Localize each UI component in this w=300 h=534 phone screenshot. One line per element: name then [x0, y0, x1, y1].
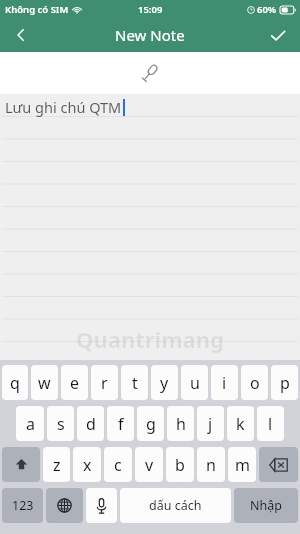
button[interactable]: Nhập [234, 488, 298, 523]
staticText: j [208, 413, 213, 435]
staticText: Nhập [250, 497, 282, 514]
staticText: e [70, 372, 80, 394]
staticText: g [146, 413, 156, 435]
staticText: c [114, 454, 122, 476]
button[interactable]: i [211, 365, 238, 400]
button[interactable]: c [104, 447, 132, 482]
button[interactable]: q [2, 365, 28, 400]
button[interactable]: z [43, 447, 70, 482]
button[interactable]: Shift [2, 447, 40, 482]
staticText: q [10, 372, 20, 394]
staticText: dấu cách [149, 497, 202, 514]
staticText: v [145, 454, 154, 476]
staticText: 60% [257, 3, 277, 16]
button[interactable]: Backspace [259, 447, 298, 482]
button[interactable]: y [151, 365, 178, 400]
button[interactable]: p [271, 365, 298, 400]
staticText: t [132, 372, 138, 394]
staticText: l [268, 413, 273, 435]
button[interactable]: w [31, 365, 58, 400]
button[interactable]: Save note [256, 18, 300, 52]
button[interactable]: dấu cách [120, 488, 231, 523]
button[interactable]: h [167, 406, 194, 441]
staticText: New Note [115, 25, 185, 45]
button[interactable]: l [257, 406, 284, 441]
staticText: b [175, 454, 185, 476]
button[interactable]: f [107, 406, 134, 441]
staticText: p [280, 372, 290, 394]
staticText: 123 [12, 497, 34, 514]
button[interactable]: Lưu ghi chú QTM [0, 94, 300, 360]
button[interactable]: o [241, 365, 268, 400]
button[interactable]: j [197, 406, 224, 441]
button[interactable]: Back [0, 18, 42, 52]
staticText: x [83, 454, 92, 476]
button[interactable]: b [166, 447, 194, 482]
button[interactable]: v [135, 447, 163, 482]
staticText: i [222, 372, 227, 394]
staticText: 15:09 [138, 3, 163, 16]
button[interactable]: e [61, 365, 88, 400]
button[interactable]: n [197, 447, 225, 482]
staticText: y [160, 372, 169, 394]
staticText: k [236, 413, 245, 435]
staticText: s [57, 413, 65, 435]
button[interactable]: x [73, 447, 101, 482]
button[interactable]: s [47, 406, 74, 441]
staticText: f [118, 413, 124, 435]
staticText: w [38, 372, 51, 394]
button[interactable]: d [77, 406, 104, 441]
button[interactable]: a [16, 406, 44, 441]
staticText: Không có SIM [5, 3, 69, 16]
staticText: d [86, 413, 96, 435]
button[interactable]: Voice input [133, 56, 167, 90]
staticText: n [206, 454, 216, 476]
button[interactable]: r [91, 365, 118, 400]
staticText: a [26, 413, 35, 435]
button[interactable]: u [181, 365, 208, 400]
button[interactable]: Dictate [86, 488, 117, 523]
staticText: Lưu ghi chú QTM [5, 97, 122, 117]
button[interactable]: Change keyboard language [46, 488, 83, 523]
button[interactable]: 123 [2, 488, 43, 523]
staticText: z [53, 454, 61, 476]
button[interactable]: t [121, 365, 148, 400]
staticText: r [101, 372, 108, 394]
staticText: o [250, 372, 260, 394]
staticText: m [235, 454, 250, 476]
button[interactable]: m [228, 447, 256, 482]
button[interactable]: g [137, 406, 164, 441]
button[interactable]: k [227, 406, 254, 441]
staticText: h [176, 413, 186, 435]
staticText: u [190, 372, 200, 394]
staticText: Quantrimang [76, 324, 224, 354]
